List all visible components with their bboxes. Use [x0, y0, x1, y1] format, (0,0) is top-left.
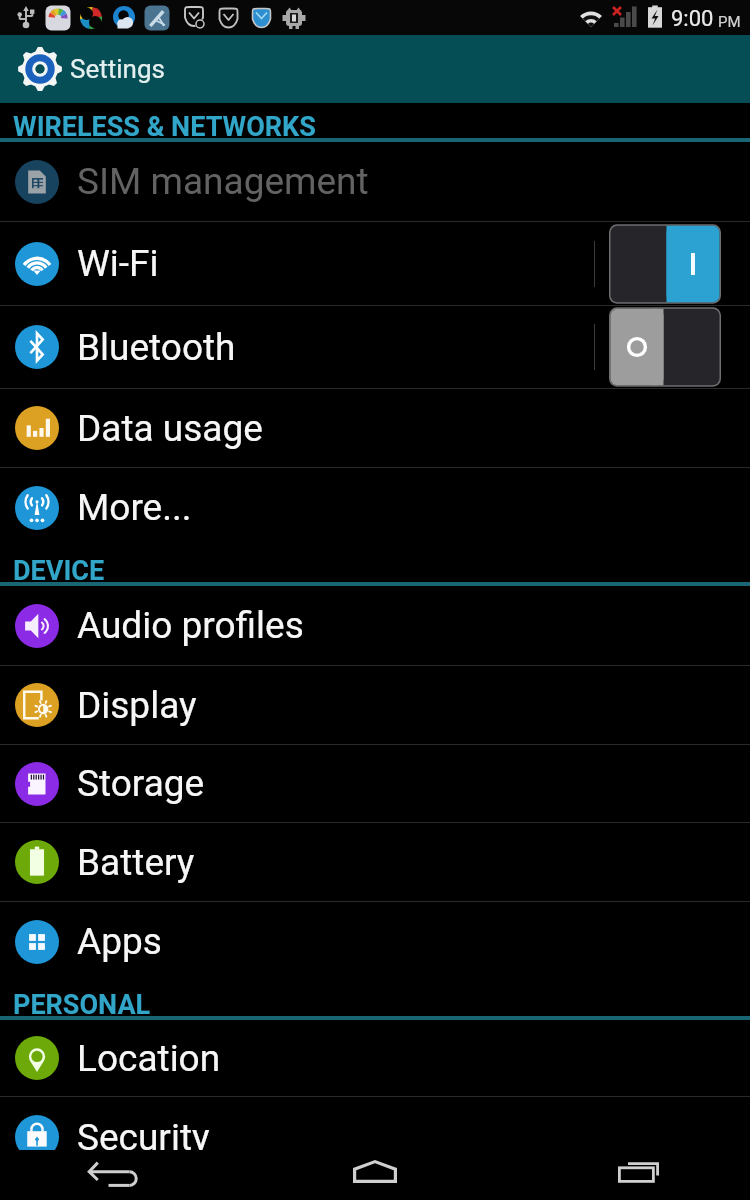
staticText: Audio profiles — [77, 604, 304, 647]
button[interactable]: Apps — [0, 902, 750, 981]
staticText: WIRELESS & NETWORKS — [13, 111, 316, 143]
staticText: Display — [77, 684, 197, 727]
staticText: PERSONAL — [13, 989, 151, 1021]
staticText: More... — [77, 486, 192, 529]
button[interactable]: Battery — [0, 823, 750, 901]
staticText: Security — [77, 1116, 210, 1159]
staticText: Settings — [70, 54, 165, 84]
staticText: 9:00 — [671, 6, 714, 32]
staticText: Data usage — [77, 407, 263, 450]
button[interactable]: Storage — [0, 745, 750, 822]
button[interactable]: Back — [0, 1150, 250, 1200]
button[interactable]: Turn on — [609, 307, 721, 387]
staticText: SIM management — [77, 160, 369, 203]
staticText: Storage — [77, 762, 205, 805]
button[interactable]: Display — [0, 666, 750, 744]
button[interactable]: Bluetooth — [0, 306, 750, 388]
staticText: Battery — [77, 841, 195, 884]
button[interactable]: Home — [250, 1150, 500, 1200]
button[interactable]: Wi-Fi — [0, 222, 750, 305]
staticText: DEVICE — [13, 555, 105, 587]
staticText: PM — [718, 13, 741, 31]
button[interactable]: Recent apps — [500, 1150, 750, 1200]
staticText: Bluetooth — [77, 326, 236, 369]
staticText: Wi-Fi — [77, 242, 159, 285]
button[interactable]: Location — [0, 1020, 750, 1096]
button[interactable]: SIM management — [0, 142, 750, 221]
button[interactable]: Audio profiles — [0, 586, 750, 665]
button[interactable]: Security — [0, 1097, 750, 1177]
staticText: Location — [77, 1037, 221, 1080]
button[interactable]: Turn off — [609, 224, 721, 304]
button[interactable]: More... — [0, 468, 750, 547]
staticText: Apps — [77, 920, 162, 963]
button[interactable]: Data usage — [0, 389, 750, 467]
